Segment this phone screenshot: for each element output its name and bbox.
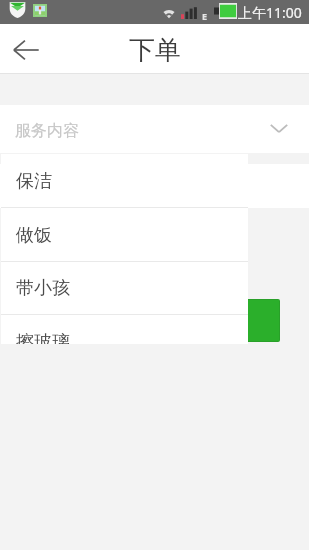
staticText: 带小孩 [16,277,70,300]
button[interactable]: Back [6,30,44,68]
staticText: 下单 [129,34,181,67]
staticText: E [202,10,208,22]
button[interactable]: 带小孩 [1,261,248,315]
button[interactable]: 保洁 [1,154,248,208]
button[interactable] [181,300,279,341]
staticText: 擦玻璃 [16,331,70,344]
staticText: 上午11:00 [238,3,302,22]
staticText: 服务内容 [15,121,79,141]
staticText: 做饭 [16,224,52,247]
button[interactable]: 做饭 [1,208,248,262]
staticText: 保洁 [16,170,52,193]
button[interactable]: 擦玻璃 [1,315,248,344]
button[interactable]: 服务内容 [0,105,309,153]
